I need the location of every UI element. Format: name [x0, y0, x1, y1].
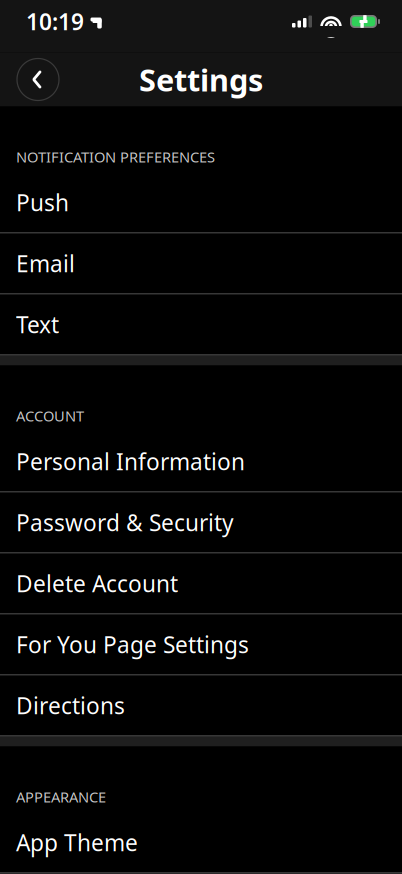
staticText: Directions: [16, 690, 125, 720]
staticText: For You Page Settings: [16, 629, 249, 659]
staticText: Email: [16, 248, 75, 278]
staticText: Personal Information: [16, 446, 245, 476]
staticText: Text: [16, 309, 59, 339]
button[interactable]: Text: [0, 294, 402, 354]
staticText: ACCOUNT: [16, 406, 84, 425]
button[interactable]: For You Page Settings: [0, 614, 402, 674]
staticText: Password & Security: [16, 507, 234, 537]
button[interactable]: Password & Security: [0, 492, 402, 552]
staticText: Push: [16, 187, 69, 217]
staticText: App Theme: [16, 827, 138, 857]
button[interactable]: Push: [0, 172, 402, 232]
staticText: APPEARANCE: [16, 787, 106, 806]
staticText: Settings: [139, 59, 263, 100]
button[interactable]: Back: [16, 57, 60, 101]
button[interactable]: Personal Information: [0, 431, 402, 491]
staticText: Delete Account: [16, 568, 178, 598]
staticText: 10:19: [26, 6, 84, 36]
button[interactable]: Directions: [0, 675, 402, 735]
button[interactable]: Email: [0, 233, 402, 293]
button[interactable]: App Theme: [0, 812, 402, 872]
button[interactable]: Delete Account: [0, 553, 402, 613]
staticText: NOTIFICATION PREFERENCES: [16, 147, 215, 166]
